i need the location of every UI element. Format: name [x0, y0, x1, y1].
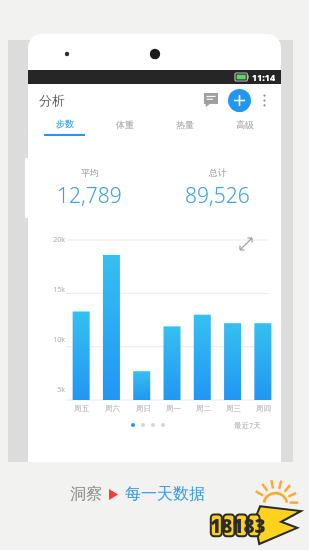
staticText: 洞察 — [70, 484, 102, 504]
staticText: 最近7天 — [234, 420, 261, 430]
staticText: 18183 — [210, 513, 266, 539]
staticText: 89,526 — [185, 181, 250, 210]
button[interactable]: Expand chart — [236, 234, 256, 254]
staticText: 周五 — [74, 404, 89, 413]
staticText: 体重 — [116, 119, 134, 130]
staticText: 10k — [45, 335, 65, 345]
staticText: 12,789 — [57, 181, 122, 210]
staticText: 15k — [45, 285, 65, 295]
button[interactable]: 总计 — [153, 158, 281, 218]
button[interactable]: 体重 — [95, 115, 155, 139]
staticText: 周四 — [256, 404, 271, 413]
staticText: 5k — [45, 385, 65, 395]
button[interactable]: 高级 — [215, 115, 275, 139]
button[interactable]: 步数 — [34, 115, 95, 139]
staticText: 周二 — [196, 404, 211, 413]
staticText: 每一天数据 — [125, 484, 205, 504]
button[interactable]: Messages — [198, 87, 224, 113]
staticText: 步数 — [56, 118, 74, 129]
button[interactable] — [151, 423, 155, 427]
staticText: 总计 — [209, 167, 227, 178]
button[interactable]: 平均 — [25, 158, 153, 218]
staticText: 热量 — [176, 119, 194, 130]
button[interactable]: More options — [253, 89, 275, 111]
button[interactable] — [141, 423, 145, 427]
staticText: 11:14 — [252, 71, 276, 83]
staticText: 周六 — [105, 404, 120, 413]
button[interactable] — [131, 423, 135, 427]
staticText: 周三 — [226, 404, 241, 413]
staticText: 20k — [45, 235, 65, 245]
button[interactable] — [161, 423, 165, 427]
staticText: 平均 — [81, 167, 99, 178]
staticText: 高级 — [236, 119, 254, 130]
button[interactable]: Add — [228, 89, 251, 112]
button[interactable]: 热量 — [155, 115, 215, 139]
staticText: 周一 — [166, 404, 181, 413]
staticText: 分析 — [39, 92, 65, 108]
staticText: 周日 — [136, 404, 151, 413]
